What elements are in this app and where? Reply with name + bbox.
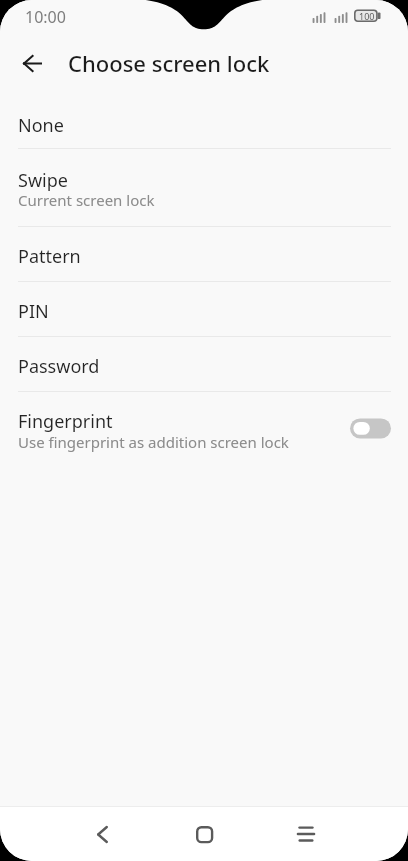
staticText: Pattern bbox=[18, 244, 81, 269]
staticText: Fingerprint bbox=[18, 409, 113, 434]
staticText: Password bbox=[18, 354, 100, 379]
button[interactable]: Fingerprint toggle bbox=[350, 418, 391, 439]
staticText: 100 bbox=[359, 10, 375, 22]
staticText: PIN bbox=[18, 299, 49, 324]
staticText: Use fingerprint as addition screen lock bbox=[18, 432, 289, 452]
button[interactable]: Fingerprint bbox=[0, 392, 408, 470]
button[interactable]: None bbox=[0, 94, 408, 149]
button[interactable]: PIN bbox=[0, 282, 408, 337]
button[interactable]: Recent apps bbox=[282, 810, 330, 858]
button[interactable]: Swipe bbox=[0, 149, 408, 227]
staticText: Current screen lock bbox=[18, 190, 155, 210]
staticText: Choose screen lock bbox=[68, 48, 270, 78]
button[interactable]: Back bbox=[78, 810, 126, 858]
staticText: 10:00 bbox=[25, 6, 66, 28]
button[interactable]: Password bbox=[0, 337, 408, 392]
staticText: Swipe bbox=[18, 168, 68, 193]
button[interactable]: Back bbox=[8, 39, 56, 87]
staticText: None bbox=[18, 113, 64, 138]
button[interactable]: Pattern bbox=[0, 227, 408, 282]
button[interactable]: Home bbox=[180, 810, 228, 858]
